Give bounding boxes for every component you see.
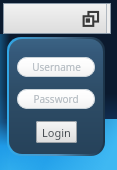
button[interactable]: Restore window — [83, 11, 99, 27]
staticText: Username — [32, 60, 81, 74]
staticText: Password — [33, 92, 79, 106]
button[interactable]: Password — [17, 89, 95, 109]
button[interactable]: Username — [17, 57, 95, 77]
staticText: Login — [42, 125, 71, 140]
button[interactable]: Login — [36, 121, 77, 143]
